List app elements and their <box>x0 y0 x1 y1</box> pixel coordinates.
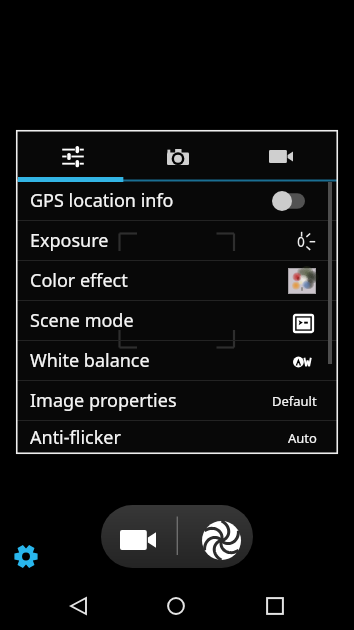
button[interactable]: Settings <box>14 545 38 568</box>
staticText: Scene mode <box>30 308 134 333</box>
button[interactable]: Scene mode <box>16 301 338 340</box>
button[interactable]: GPS location info <box>16 181 338 220</box>
button[interactable]: Record video <box>101 505 177 568</box>
button[interactable]: Exposure <box>16 221 338 260</box>
button[interactable]: Recents <box>251 582 299 630</box>
button[interactable]: White balance <box>16 341 338 380</box>
button[interactable]: Video <box>231 130 338 177</box>
staticText: Default <box>272 392 317 410</box>
button[interactable]: Anti-flicker <box>16 421 338 454</box>
staticText: Image properties <box>30 388 177 413</box>
staticText: Anti-flicker <box>30 425 121 450</box>
staticText: Exposure <box>30 228 109 253</box>
staticText: GPS location info <box>30 188 174 213</box>
button[interactable]: Home <box>152 582 200 630</box>
button[interactable]: Color effect <box>16 261 338 300</box>
staticText: Color effect <box>30 268 128 293</box>
button[interactable]: Settings <box>16 130 124 177</box>
button[interactable]: Take photo <box>177 505 253 568</box>
staticText: Auto <box>288 429 317 447</box>
button[interactable]: Back <box>54 582 102 630</box>
button[interactable]: Camera <box>124 130 231 177</box>
staticText: White balance <box>30 348 150 373</box>
button[interactable]: Image properties <box>16 381 338 420</box>
